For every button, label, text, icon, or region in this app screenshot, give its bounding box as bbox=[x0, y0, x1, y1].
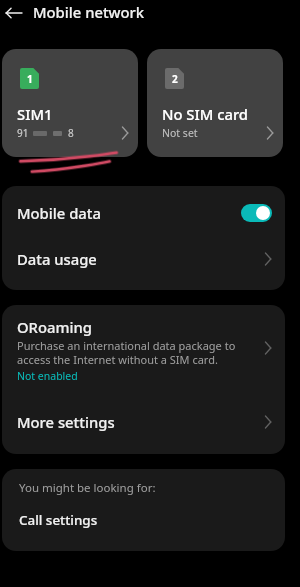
staticText: Purchase an international data package t… bbox=[17, 338, 236, 353]
staticText: Not enabled bbox=[17, 369, 78, 383]
button[interactable]: 1 bbox=[2, 49, 138, 157]
button[interactable]: You might be looking for: bbox=[2, 469, 285, 551]
staticText: More settings bbox=[17, 412, 115, 432]
staticText: Not set bbox=[162, 126, 198, 140]
staticText: ORoaming bbox=[17, 317, 92, 337]
staticText: No SIM card bbox=[162, 104, 249, 124]
staticText: Mobile network bbox=[33, 2, 145, 22]
button[interactable]: Mobile data toggle bbox=[241, 204, 272, 222]
staticText: 91 bbox=[17, 126, 29, 140]
button[interactable]: 2 bbox=[147, 49, 283, 157]
button[interactable]: Back bbox=[3, 2, 24, 23]
staticText: Mobile data bbox=[17, 203, 101, 223]
staticText: You might be looking for: bbox=[19, 480, 156, 496]
button[interactable]: ORoaming bbox=[2, 305, 285, 396]
staticText: 2 bbox=[172, 72, 178, 86]
staticText: Data usage bbox=[17, 249, 97, 269]
button[interactable]: Mobile data bbox=[2, 186, 285, 239]
staticText: 1 bbox=[27, 72, 33, 86]
staticText: access the Internet without a SIM card. bbox=[17, 352, 218, 367]
staticText: 8 bbox=[68, 126, 74, 140]
button[interactable]: Data usage bbox=[2, 236, 285, 281]
button[interactable]: More settings bbox=[2, 393, 285, 451]
staticText: Call settings bbox=[19, 511, 98, 529]
staticText: SIM1 bbox=[17, 104, 53, 124]
